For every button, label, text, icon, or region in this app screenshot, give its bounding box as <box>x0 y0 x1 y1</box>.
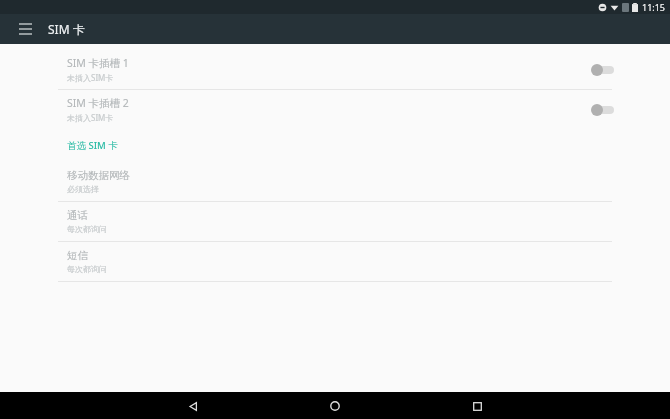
staticText: 短信 <box>67 249 88 262</box>
staticText: 首选 SIM 卡 <box>67 139 118 152</box>
staticText: SIM 卡插槽 1 <box>67 56 129 70</box>
staticText: SIM 卡插槽 2 <box>67 96 129 110</box>
button[interactable]: 短信 <box>0 242 670 281</box>
button[interactable]: SIM 卡插槽 2 <box>0 90 670 129</box>
staticText: 未插入SIM卡 <box>67 72 114 83</box>
staticText: 必须选择 <box>67 184 99 194</box>
button[interactable]: Recent apps <box>464 393 490 419</box>
button[interactable]: Toggle SIM slot <box>590 59 620 81</box>
button[interactable]: Back <box>180 393 206 419</box>
staticText: 移动数据网络 <box>67 169 130 182</box>
staticText: 每次都询问 <box>67 224 107 234</box>
staticText: SIM 卡 <box>48 21 85 37</box>
staticText: 每次都询问 <box>67 264 107 274</box>
button[interactable]: Open navigation drawer <box>14 18 36 40</box>
button[interactable]: SIM 卡插槽 1 <box>0 50 670 89</box>
button[interactable]: 通话 <box>0 202 670 241</box>
staticText: 未插入SIM卡 <box>67 112 114 123</box>
button[interactable]: Home <box>322 393 348 419</box>
button[interactable]: 移动数据网络 <box>0 162 670 201</box>
staticText: 11:15 <box>642 1 666 13</box>
button[interactable]: Toggle SIM slot <box>590 99 620 121</box>
staticText: 通话 <box>67 209 88 222</box>
